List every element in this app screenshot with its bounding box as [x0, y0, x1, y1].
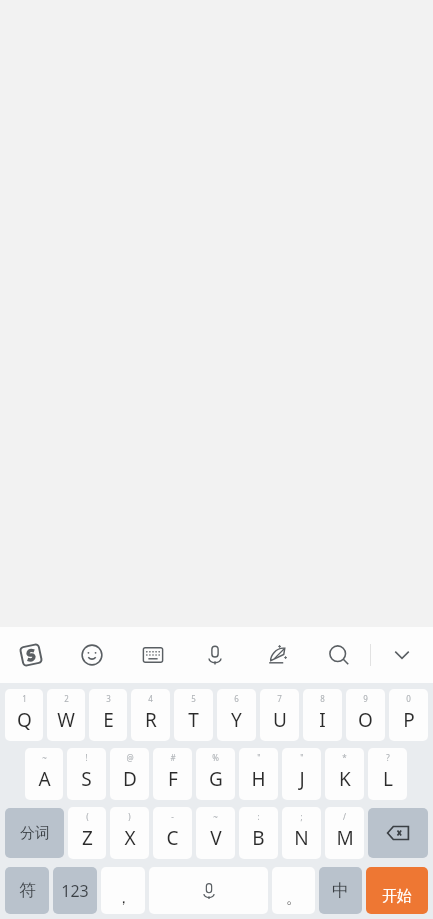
button[interactable]: Space [149, 867, 268, 914]
staticText: Y [231, 707, 242, 733]
staticText: E [103, 707, 114, 733]
button[interactable]: 0 [389, 689, 428, 741]
button[interactable]: Search [308, 627, 370, 683]
button[interactable]: / [325, 807, 364, 859]
staticText: 。 [286, 889, 301, 908]
staticText: ) [128, 811, 131, 822]
button[interactable]: ? [368, 748, 407, 800]
staticText: I [319, 707, 326, 733]
staticText: M [336, 825, 354, 851]
staticText: L [383, 766, 393, 792]
staticText: D [123, 766, 137, 792]
staticText: K [339, 766, 351, 792]
button[interactable]: 中 [319, 867, 362, 914]
button[interactable]: 。 [272, 867, 315, 914]
button[interactable]: 9 [346, 689, 385, 741]
button[interactable]: * [325, 748, 364, 800]
staticText: " [300, 752, 304, 763]
button[interactable]: : [239, 807, 278, 859]
button[interactable]: 3 [89, 689, 127, 741]
button[interactable]: 符 [5, 867, 49, 914]
staticText: O [358, 707, 373, 733]
button[interactable]: ~ [196, 807, 235, 859]
staticText: G [209, 766, 223, 792]
staticText: 中 [332, 880, 349, 901]
button[interactable]: # [153, 748, 192, 800]
staticText: A [38, 766, 51, 792]
staticText: @ [126, 752, 134, 763]
staticText: 5 [191, 693, 196, 704]
staticText: ; [300, 811, 303, 822]
staticText: R [145, 707, 157, 733]
button[interactable]: Sogou input method [0, 627, 61, 683]
staticText: U [273, 707, 287, 733]
button[interactable]: 4 [131, 689, 170, 741]
staticText: ， [116, 889, 131, 908]
staticText: / [343, 811, 346, 822]
staticText: N [294, 825, 309, 851]
button[interactable]: ! [67, 748, 106, 800]
button[interactable]: 6 [217, 689, 256, 741]
button[interactable]: 1 [5, 689, 43, 741]
staticText: 4 [148, 693, 153, 704]
button[interactable]: 5 [174, 689, 213, 741]
staticText: 8 [320, 693, 325, 704]
staticText: B [252, 825, 265, 851]
staticText: ( [86, 811, 89, 822]
staticText: 开始 [382, 887, 412, 906]
button[interactable]: 2 [47, 689, 85, 741]
staticText: P [403, 707, 415, 733]
staticText: C [166, 825, 179, 851]
staticText: 2 [64, 693, 69, 704]
staticText: 0 [406, 693, 411, 704]
staticText: 123 [61, 880, 89, 902]
button[interactable]: 8 [303, 689, 342, 741]
staticText: W [57, 707, 75, 733]
staticText: ! [85, 752, 88, 763]
button[interactable]: Voice input [184, 627, 246, 683]
button[interactable]: ， [101, 867, 145, 914]
staticText: ~ [42, 752, 47, 763]
staticText: 6 [234, 693, 239, 704]
staticText: J [299, 766, 305, 792]
staticText: 3 [106, 693, 111, 704]
button[interactable]: ) [110, 807, 149, 859]
staticText: % [212, 752, 219, 763]
button[interactable]: 7 [260, 689, 299, 741]
staticText: Z [82, 825, 93, 851]
button[interactable]: % [196, 748, 235, 800]
button[interactable]: ~ [25, 748, 63, 800]
staticText: T [188, 707, 199, 733]
staticText: Q [17, 707, 32, 733]
button[interactable]: Backspace [368, 808, 428, 858]
staticText: 9 [363, 693, 368, 704]
button[interactable]: Emoji [61, 627, 122, 683]
button[interactable]: 开始 [366, 867, 428, 914]
staticText: H [251, 766, 266, 792]
staticText: # [170, 752, 176, 763]
button[interactable]: - [153, 807, 192, 859]
button[interactable]: ; [282, 807, 321, 859]
staticText: 符 [19, 880, 36, 901]
button[interactable]: ( [68, 807, 106, 859]
button[interactable]: Keyboard layout [122, 627, 184, 683]
button[interactable]: 分词 [5, 808, 64, 858]
staticText: " [257, 752, 261, 763]
button[interactable]: Hide keyboard [371, 627, 433, 683]
staticText: F [168, 766, 178, 792]
staticText: ? [386, 752, 390, 763]
staticText: 7 [277, 693, 282, 704]
staticText: S [81, 766, 92, 792]
staticText: : [257, 811, 260, 822]
button[interactable]: @ [110, 748, 149, 800]
button[interactable]: " [239, 748, 278, 800]
button[interactable]: 123 [53, 867, 97, 914]
staticText: V [210, 825, 222, 851]
button[interactable]: " [282, 748, 321, 800]
button[interactable]: Handwriting [246, 627, 308, 683]
staticText: 分词 [20, 824, 50, 843]
staticText: - [171, 811, 174, 822]
staticText: ~ [213, 811, 218, 822]
staticText: * [342, 752, 347, 763]
staticText: X [124, 825, 136, 851]
